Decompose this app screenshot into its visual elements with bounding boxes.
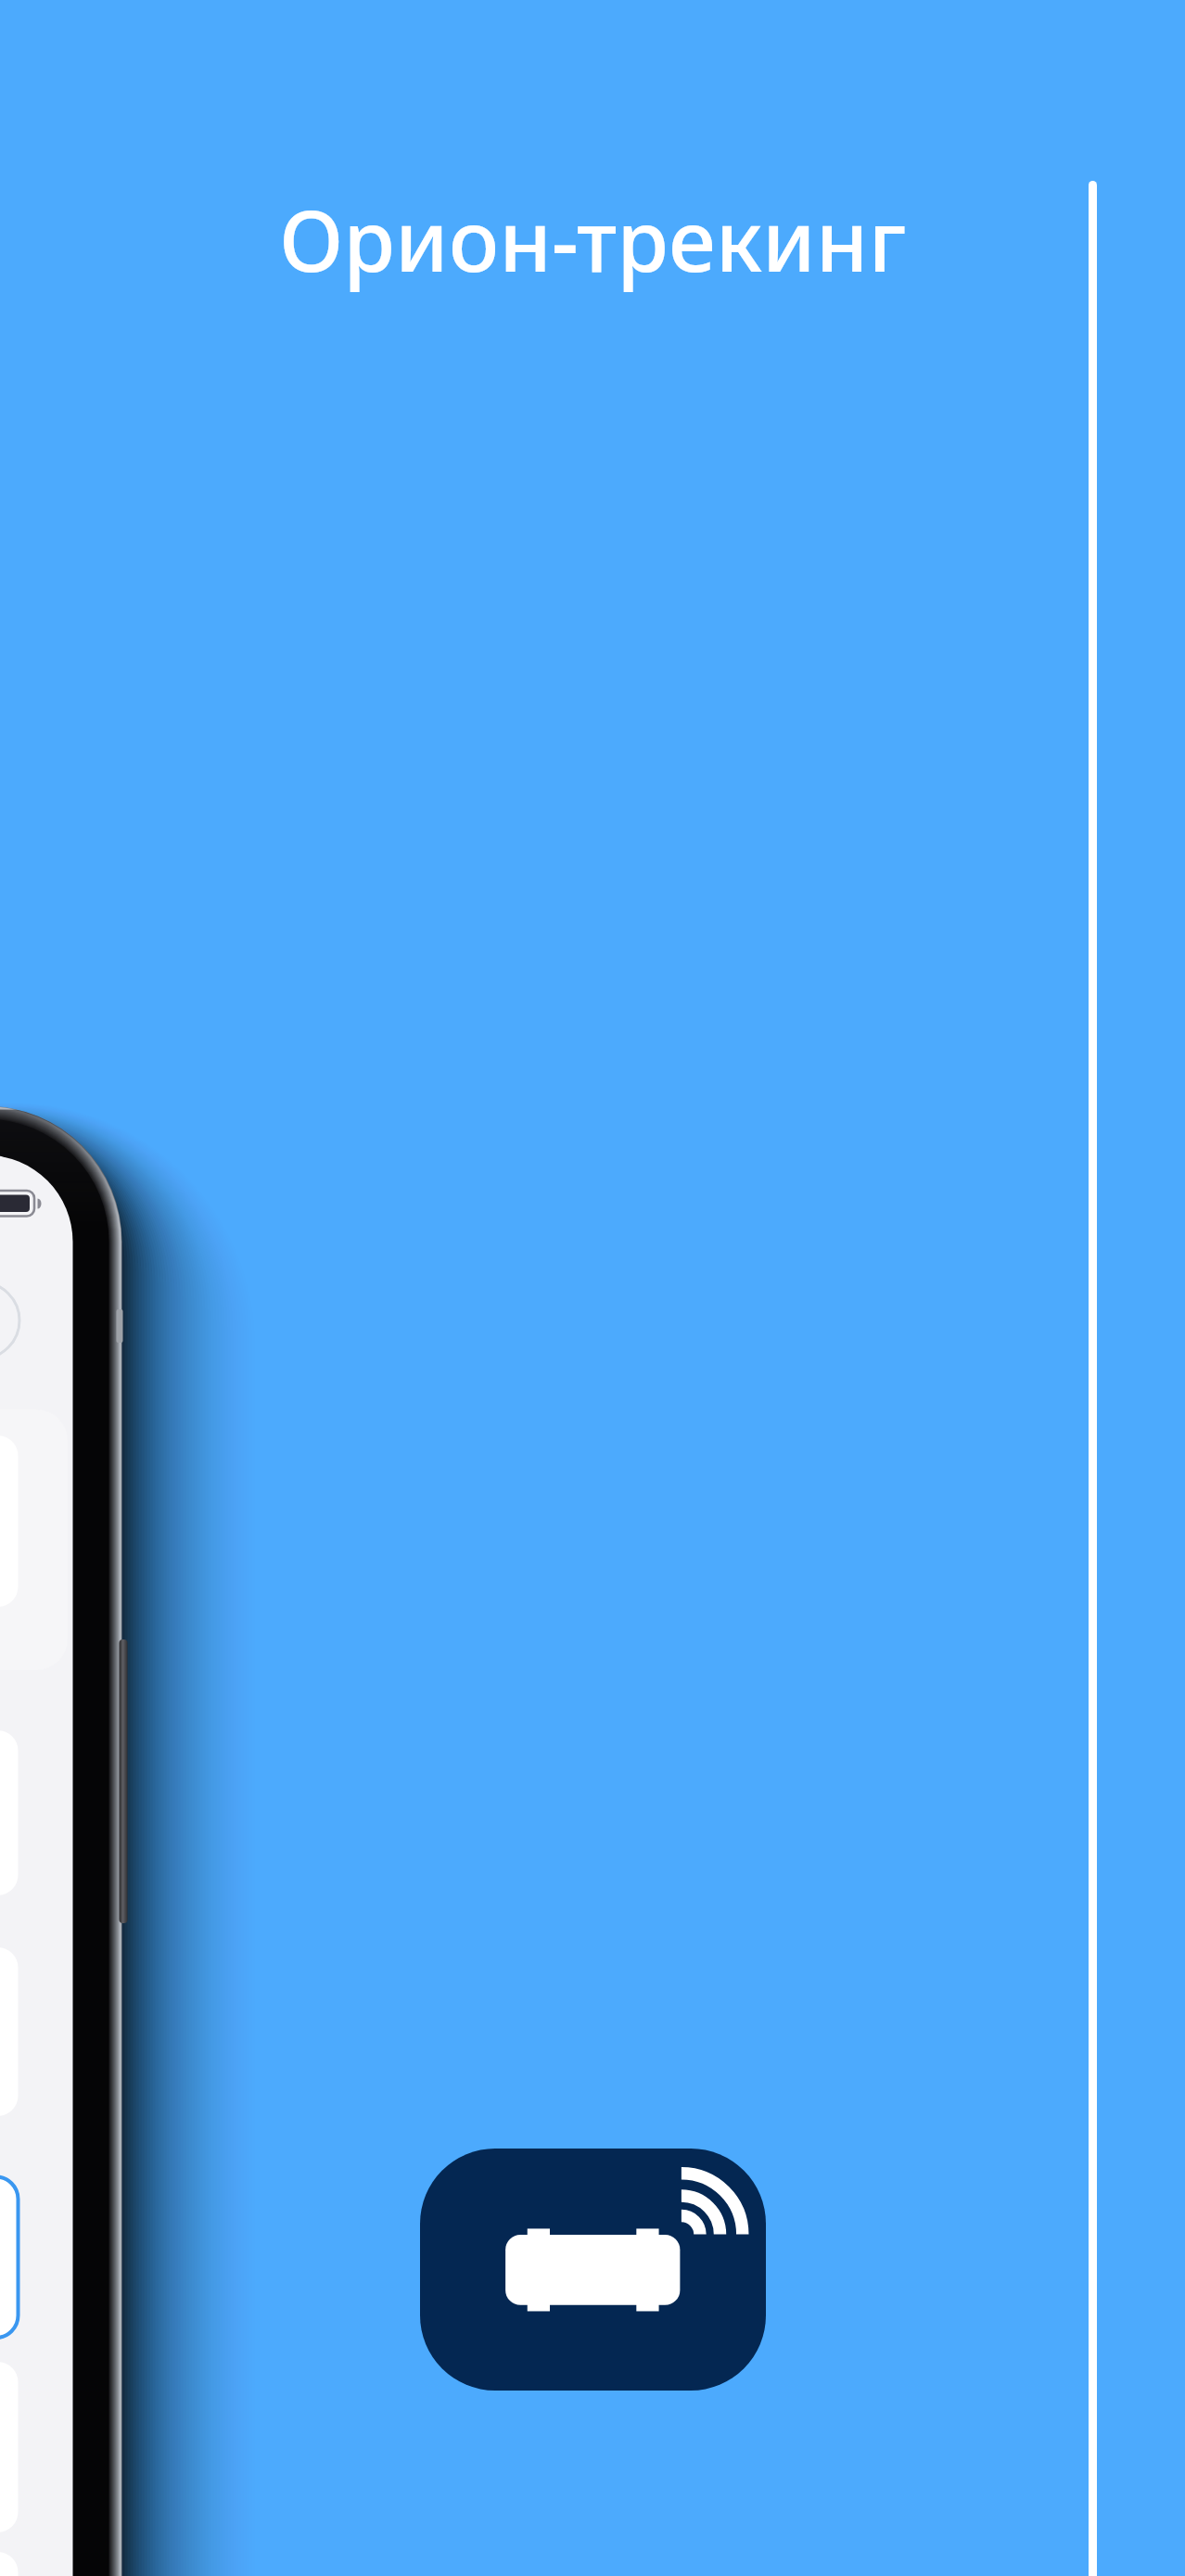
button[interactable]: Орион-трекинг — открыть приложение	[420, 2149, 766, 2391]
staticText: Орион-трекинг	[0, 182, 1185, 2576]
